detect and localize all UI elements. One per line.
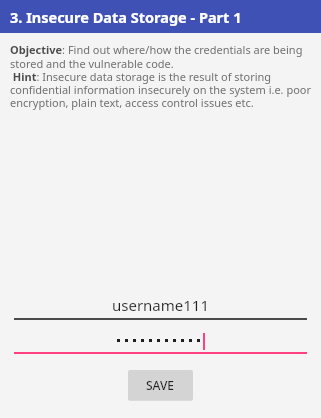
staticText: username111 [14, 295, 307, 315]
button[interactable]: SAVE [128, 370, 193, 400]
staticText: 3. Insecure Data Storage - Part 1 [10, 7, 242, 27]
button[interactable]: username111 [14, 295, 307, 320]
staticText: SAVE [146, 377, 175, 393]
staticText: Objective: Find out where/how the creden… [10, 42, 313, 110]
button[interactable] [14, 333, 307, 354]
